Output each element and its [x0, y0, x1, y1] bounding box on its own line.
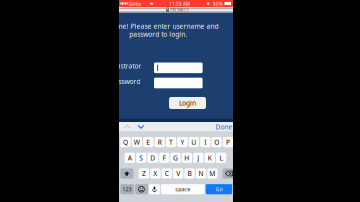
staticText: Z [142, 169, 146, 178]
staticText: V [176, 169, 180, 178]
button[interactable]: Login [169, 97, 206, 109]
staticText: K [208, 153, 212, 162]
staticText: P [226, 138, 230, 147]
staticText: Q [123, 138, 128, 147]
staticText: T [169, 138, 173, 147]
button[interactable]: B [184, 168, 195, 179]
staticText: ssword [118, 77, 140, 86]
button[interactable]: Z [139, 168, 149, 179]
staticText: U [191, 138, 196, 147]
staticText: N [198, 169, 203, 178]
staticText: Login [179, 99, 196, 107]
button[interactable]: Next field [137, 125, 145, 129]
staticText: S [139, 153, 143, 162]
staticText: Y [180, 138, 184, 147]
staticText: istrator [118, 62, 141, 70]
button[interactable]: J [193, 153, 203, 163]
button[interactable]: W [132, 137, 142, 147]
staticText: I [204, 138, 206, 147]
staticText: 80% [213, 1, 223, 7]
staticText: O [214, 138, 219, 147]
button[interactable]: X [150, 168, 160, 179]
staticText: E [146, 138, 150, 147]
button[interactable]: T [166, 137, 176, 147]
button[interactable]: V [173, 168, 183, 179]
button[interactable]: R [154, 137, 165, 147]
button[interactable]: Delete [223, 168, 236, 179]
staticText: H [184, 153, 189, 162]
button[interactable]: E [143, 137, 153, 147]
staticText: Go [215, 186, 222, 193]
button[interactable]: S [136, 153, 146, 163]
button[interactable]: F [159, 153, 169, 163]
button[interactable]: Previous field [124, 125, 131, 129]
staticText: F [163, 153, 166, 162]
staticText: L [220, 153, 223, 162]
button[interactable]: A [125, 153, 135, 163]
staticText: Globe [128, 1, 141, 7]
staticText: 123 [123, 186, 132, 193]
staticText: J [197, 153, 199, 162]
staticText: R [158, 138, 162, 147]
button[interactable]: N [196, 168, 206, 179]
staticText: 192.168.1.1 [170, 7, 189, 12]
button[interactable]: H [182, 153, 192, 163]
button[interactable]: G [170, 153, 181, 163]
button[interactable]: Go [206, 184, 232, 194]
button[interactable]: space [161, 184, 205, 194]
staticText: M [209, 169, 215, 178]
staticText: X [153, 169, 157, 178]
button[interactable]: Dictation [149, 184, 160, 194]
staticText: space [175, 186, 190, 193]
button[interactable]: Y [177, 137, 188, 147]
button[interactable]: Q [120, 137, 131, 147]
button[interactable]: C [162, 168, 172, 179]
button[interactable]: Shift [120, 168, 133, 179]
staticText: ne! Please enter username and [118, 22, 218, 31]
staticText: B [187, 169, 191, 178]
staticText: A [128, 153, 132, 162]
button[interactable]: L [216, 153, 226, 163]
staticText: G [173, 153, 178, 162]
staticText: 11:59 AM [169, 1, 190, 7]
button[interactable]: 123 [120, 184, 134, 194]
button[interactable]: Done [215, 122, 232, 131]
staticText: D [150, 153, 155, 162]
button[interactable]: Emoji [135, 184, 148, 194]
staticText: password to login. [129, 30, 187, 39]
button[interactable]: P [223, 137, 233, 147]
button[interactable]: D [147, 153, 158, 163]
button[interactable]: I [200, 137, 210, 147]
button[interactable]: M [207, 168, 217, 179]
button[interactable]: K [204, 153, 215, 163]
staticText: W [134, 138, 140, 147]
button[interactable]: U [189, 137, 199, 147]
staticText: C [165, 169, 169, 178]
button[interactable]: O [211, 137, 222, 147]
staticText: Done [215, 122, 232, 131]
